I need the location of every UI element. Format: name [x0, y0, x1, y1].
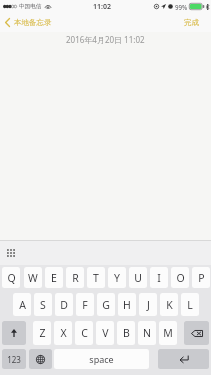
- staticText: C: [81, 326, 88, 340]
- staticText: P: [198, 271, 205, 285]
- button[interactable]: X: [54, 321, 72, 345]
- staticText: U: [134, 271, 142, 285]
- staticText: Z: [39, 326, 46, 340]
- staticText: D: [60, 298, 68, 312]
- staticText: 99%: [175, 3, 188, 11]
- button[interactable]: O: [171, 267, 189, 288]
- button[interactable]: C: [75, 321, 93, 345]
- staticText: V: [102, 326, 109, 340]
- button[interactable]: [184, 321, 209, 345]
- staticText: space: [89, 353, 114, 365]
- button[interactable]: I: [150, 267, 168, 288]
- staticText: A: [19, 298, 26, 312]
- staticText: 123: [7, 354, 21, 365]
- staticText: I: [157, 271, 161, 285]
- staticText: 完成: [184, 18, 199, 27]
- button[interactable]: S: [34, 293, 52, 316]
- button[interactable]: L: [181, 293, 199, 316]
- button[interactable]: H: [118, 293, 136, 316]
- staticText: K: [166, 298, 173, 312]
- staticText: O: [176, 271, 185, 285]
- staticText: W: [28, 271, 38, 285]
- button[interactable]: V: [96, 321, 114, 345]
- button[interactable]: T: [87, 267, 105, 288]
- button[interactable]: G: [97, 293, 115, 316]
- button[interactable]: [29, 349, 52, 369]
- staticText: 本地备忘录: [14, 18, 52, 27]
- staticText: 2016年4月20日 11:02: [66, 34, 145, 45]
- staticText: X: [60, 326, 67, 340]
- staticText: 中国电信: [19, 3, 42, 10]
- button[interactable]: K: [160, 293, 178, 316]
- staticText: G: [102, 298, 110, 312]
- button[interactable]: M: [159, 321, 177, 345]
- button[interactable]: Q: [2, 267, 20, 288]
- button[interactable]: Z: [33, 321, 51, 345]
- button[interactable]: A: [13, 293, 31, 316]
- staticText: B: [123, 326, 130, 340]
- button[interactable]: space: [54, 349, 149, 369]
- button[interactable]: [158, 349, 209, 369]
- button[interactable]: N: [138, 321, 156, 345]
- button[interactable]: 123: [2, 349, 26, 369]
- button[interactable]: 完成: [178, 13, 211, 32]
- staticText: E: [51, 271, 57, 285]
- button[interactable]: J: [139, 293, 157, 316]
- staticText: H: [123, 298, 131, 312]
- button[interactable]: E: [45, 267, 63, 288]
- staticText: F: [82, 298, 88, 312]
- staticText: 11:02: [93, 2, 111, 12]
- staticText: N: [143, 326, 151, 340]
- staticText: Q: [7, 271, 16, 285]
- button[interactable]: F: [76, 293, 94, 316]
- button[interactable]: W: [24, 267, 42, 288]
- button[interactable]: R: [66, 267, 84, 288]
- button[interactable]: U: [129, 267, 147, 288]
- staticText: J: [147, 298, 150, 312]
- button[interactable]: Y: [108, 267, 126, 288]
- staticText: S: [40, 298, 46, 312]
- staticText: T: [93, 271, 99, 285]
- staticText: L: [187, 298, 193, 312]
- button[interactable]: B: [117, 321, 135, 345]
- staticText: Y: [114, 271, 120, 285]
- staticText: M: [163, 326, 173, 340]
- staticText: R: [72, 271, 79, 285]
- button[interactable]: P: [192, 267, 210, 288]
- button[interactable]: Keyboard layout options: [0, 240, 22, 265]
- button[interactable]: 本地备忘录: [0, 13, 58, 32]
- button[interactable]: D: [55, 293, 73, 316]
- button[interactable]: [2, 321, 26, 345]
